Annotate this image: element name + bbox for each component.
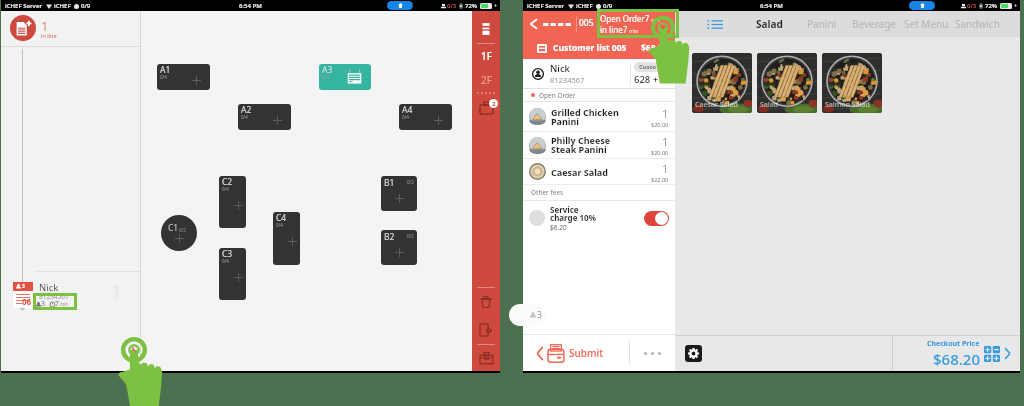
staticText: C3: [222, 248, 233, 260]
button[interactable]: 2F: [472, 68, 500, 91]
button[interactable]: A1: [157, 64, 210, 90]
button[interactable]: Submit: [523, 335, 629, 371]
staticText: iCHEF Server: [5, 2, 43, 10]
staticText: 3: [41, 299, 46, 309]
button[interactable]: Delete: [472, 288, 500, 316]
staticText: 0/4: [322, 74, 329, 80]
staticText: A3: [322, 64, 333, 76]
button[interactable]: Settings: [675, 336, 712, 371]
staticText: B1: [384, 177, 395, 189]
staticText: iCHEF Server: [527, 2, 565, 10]
button[interactable]: Logout: [472, 316, 500, 344]
staticText: Set Menu: [904, 17, 949, 31]
staticText: Beverage: [852, 17, 896, 31]
button[interactable]: Toolbox: [472, 345, 500, 371]
button[interactable]: List view: [707, 18, 723, 31]
button[interactable]: 1F: [472, 44, 500, 68]
staticText: $22.00: [651, 176, 669, 183]
staticText: 1: [41, 17, 49, 35]
staticText: Panini: [807, 17, 837, 31]
staticText: 2: [492, 100, 496, 108]
staticText: C2: [222, 176, 233, 188]
staticText: 81234567: [550, 75, 585, 85]
button[interactable]: 1: [1, 11, 140, 46]
button[interactable]: 3: [1, 271, 140, 321]
button[interactable]: Checkout Price: [893, 336, 1020, 371]
button[interactable]: Grilled Chicken Panini: [523, 102, 675, 131]
staticText: C4: [276, 212, 287, 224]
staticText: Custo: [639, 63, 657, 71]
button[interactable]: A2: [238, 104, 291, 130]
button[interactable]: Salad: [757, 53, 817, 113]
staticText: 3: [22, 283, 25, 290]
staticText: Grilled Chicken Panini: [551, 106, 619, 128]
button[interactable]: Bag: [472, 96, 500, 120]
staticText: A2: [241, 104, 252, 116]
staticText: 0/4: [222, 258, 229, 264]
button[interactable]: Philly Cheese Steak Panini: [523, 132, 675, 158]
button[interactable]: Customer list 005: [523, 37, 675, 59]
button[interactable]: A3: [319, 64, 371, 90]
staticText: 0/4: [241, 114, 248, 120]
staticText: Caesar Salad: [551, 166, 608, 178]
button[interactable]: Beverage: [848, 12, 900, 36]
staticText: 1: [662, 161, 669, 176]
staticText: Checkout Price: [927, 339, 980, 349]
staticText: 0/2: [179, 227, 186, 233]
button[interactable]: C1: [161, 215, 197, 251]
staticText: min: [60, 301, 69, 307]
staticText: Other fees: [531, 188, 564, 197]
staticText: Nick: [39, 281, 59, 294]
staticText: 0/3: [447, 2, 457, 10]
button[interactable]: Caesar Salad: [523, 159, 675, 184]
button[interactable]: Menu: [479, 22, 493, 36]
staticText: Sandwich: [955, 17, 1000, 31]
button[interactable]: Salad: [752, 12, 787, 36]
staticText: 0/2: [407, 233, 414, 239]
button[interactable]: Salmon Salad: [822, 53, 882, 113]
button[interactable]: B2: [381, 230, 417, 265]
staticText: B2: [384, 231, 395, 243]
staticText: 0/2: [407, 179, 414, 185]
staticText: $20.00: [651, 121, 669, 128]
staticText: iCHEF: [54, 2, 71, 10]
staticText: 1: [662, 134, 669, 149]
staticText: $68.20: [641, 42, 668, 54]
staticText: Service charge 10%: [550, 204, 596, 223]
button[interactable]: Nick: [523, 59, 675, 88]
button[interactable]: Service charge 10%: [523, 201, 675, 235]
staticText: $68.20: [933, 349, 980, 369]
button[interactable]: Caesar Salad: [692, 53, 752, 113]
button[interactable]: A4: [399, 104, 452, 130]
staticText: 005: [579, 17, 594, 29]
button[interactable]: Sandwich: [951, 12, 1004, 36]
staticText: Salad: [760, 100, 779, 110]
button[interactable]: B1: [381, 176, 417, 211]
button[interactable]: Service charge toggle: [644, 211, 669, 226]
staticText: 1: [111, 279, 122, 304]
staticText: Submit: [569, 346, 603, 360]
staticText: 0/9: [603, 2, 613, 10]
button[interactable]: Panini: [803, 12, 841, 36]
staticText: 0/4: [222, 186, 229, 192]
staticText: min: [650, 17, 661, 24]
staticText: Caesar Salad: [695, 100, 738, 110]
staticText: Nick: [550, 62, 570, 75]
button[interactable]: C4: [273, 212, 300, 265]
staticText: +: [1014, 3, 1017, 10]
staticText: 1: [662, 106, 669, 121]
staticText: A1: [160, 64, 171, 76]
button[interactable]: Back: [527, 17, 541, 31]
staticText: in line7: [600, 24, 628, 35]
staticText: Open Order: [539, 91, 576, 100]
staticText: 72%: [465, 2, 478, 10]
staticText: 1F: [481, 49, 492, 63]
staticText: 06: [22, 296, 32, 307]
staticText: 2F: [481, 73, 492, 87]
button[interactable]: C2: [219, 176, 246, 228]
button[interactable]: C3: [219, 248, 246, 300]
button[interactable]: More: [630, 335, 675, 371]
staticText: 6:54 PM: [239, 2, 262, 10]
staticText: Salmon Salad: [825, 100, 870, 110]
button[interactable]: Set Menu: [900, 12, 953, 36]
